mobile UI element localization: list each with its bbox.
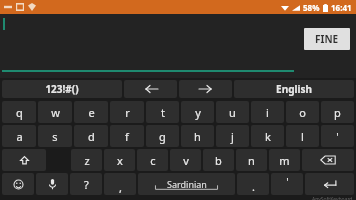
button[interactable]: ,	[104, 173, 136, 195]
staticText: d	[88, 129, 95, 144]
staticText: '	[286, 174, 289, 189]
button[interactable]: Move left	[124, 80, 177, 98]
button[interactable]: Voice input	[36, 173, 68, 195]
button[interactable]: y	[181, 101, 214, 123]
button[interactable]: Move right	[179, 80, 232, 98]
button[interactable]: Emoji	[2, 173, 34, 195]
button[interactable]: Space	[138, 173, 235, 195]
button[interactable]: '	[321, 125, 354, 147]
staticText: p	[334, 105, 341, 120]
staticText: y	[195, 105, 201, 120]
staticText: .	[252, 179, 255, 194]
staticText: i	[266, 105, 269, 120]
staticText: q	[16, 105, 23, 120]
button[interactable]: g	[146, 125, 179, 147]
button[interactable]: ?	[70, 173, 102, 195]
button[interactable]: t	[146, 101, 179, 123]
button[interactable]: .	[237, 173, 269, 195]
button[interactable]: z	[71, 149, 102, 171]
staticText: t	[161, 105, 165, 120]
staticText: u	[229, 105, 236, 120]
button[interactable]: o	[286, 101, 319, 123]
button[interactable]: 123!#()	[2, 80, 122, 98]
staticText: f	[125, 129, 129, 144]
staticText: Sardinian	[167, 178, 207, 190]
button[interactable]: w	[38, 101, 72, 123]
staticText: b	[215, 153, 222, 168]
staticText: j	[231, 129, 234, 144]
button[interactable]: Backspace	[302, 149, 354, 171]
staticText: '	[336, 129, 339, 144]
staticText: o	[299, 105, 306, 120]
button[interactable]: a	[2, 125, 36, 147]
staticText: 58%	[303, 2, 320, 13]
button[interactable]: Shift	[2, 149, 46, 171]
staticText: 123!#()	[45, 82, 79, 96]
button[interactable]: FINE	[304, 28, 350, 50]
staticText: z	[84, 153, 90, 168]
button[interactable]: q	[2, 101, 36, 123]
staticText: m	[279, 153, 290, 168]
staticText: r	[125, 105, 130, 120]
staticText: AnySoftKeyboard	[312, 196, 353, 200]
button[interactable]: i	[251, 101, 284, 123]
button[interactable]: e	[74, 101, 108, 123]
button[interactable]: r	[110, 101, 144, 123]
staticText: x	[117, 153, 123, 168]
button[interactable]: f	[110, 125, 144, 147]
staticText: c	[150, 153, 156, 168]
staticText: l	[301, 129, 304, 144]
staticText: 16:41	[331, 2, 352, 13]
button[interactable]: l	[286, 125, 319, 147]
staticText: k	[265, 129, 271, 144]
button[interactable]: c	[137, 149, 168, 171]
staticText: ?	[84, 177, 89, 192]
button[interactable]: '	[271, 173, 303, 195]
button[interactable]: s	[38, 125, 72, 147]
button[interactable]: k	[251, 125, 284, 147]
staticText: n	[248, 153, 255, 168]
button[interactable]: j	[216, 125, 249, 147]
button[interactable]: b	[203, 149, 234, 171]
staticText: g	[159, 129, 166, 144]
button[interactable]: x	[104, 149, 135, 171]
staticText: s	[52, 129, 58, 144]
staticText: ,	[119, 180, 122, 195]
button[interactable]: u	[216, 101, 249, 123]
staticText: e	[88, 105, 95, 120]
staticText: a	[16, 129, 23, 144]
button[interactable]: d	[74, 125, 108, 147]
button[interactable]: p	[321, 101, 354, 123]
staticText: FINE	[315, 32, 339, 46]
button[interactable]: Enter	[305, 173, 354, 195]
staticText: v	[183, 153, 189, 168]
staticText: w	[51, 105, 60, 120]
staticText: English	[276, 82, 312, 96]
button[interactable]: English	[234, 80, 354, 98]
button[interactable]: v	[170, 149, 201, 171]
button[interactable]: h	[181, 125, 214, 147]
button[interactable]: m	[269, 149, 300, 171]
staticText: h	[194, 129, 201, 144]
button[interactable]: n	[236, 149, 267, 171]
